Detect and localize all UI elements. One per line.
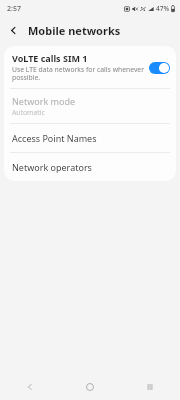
staticText: VoLTE calls SIM 1: [12, 52, 88, 64]
staticText: Use LTE data networks for calls whenever…: [12, 65, 144, 82]
staticText: Network mode: [12, 95, 76, 107]
button[interactable]: Access Point Names: [4, 124, 176, 152]
button[interactable]: Recent apps: [120, 374, 180, 400]
staticText: Access Point Names: [12, 132, 97, 144]
staticText: Mobile networks: [28, 23, 121, 38]
button[interactable]: Network operators: [4, 153, 176, 181]
button[interactable]: Network mode: [4, 89, 176, 123]
button[interactable]: Back: [0, 17, 26, 43]
staticText: 2:57: [7, 4, 21, 14]
staticText: Automatic: [12, 108, 45, 117]
button[interactable]: VoLTE calls SIM 1 toggle: [148, 61, 170, 74]
staticText: 47%: [156, 4, 169, 13]
button[interactable]: VoLTE calls SIM 1: [4, 46, 176, 88]
button[interactable]: Home: [60, 374, 120, 400]
staticText: Network operators: [12, 161, 92, 173]
